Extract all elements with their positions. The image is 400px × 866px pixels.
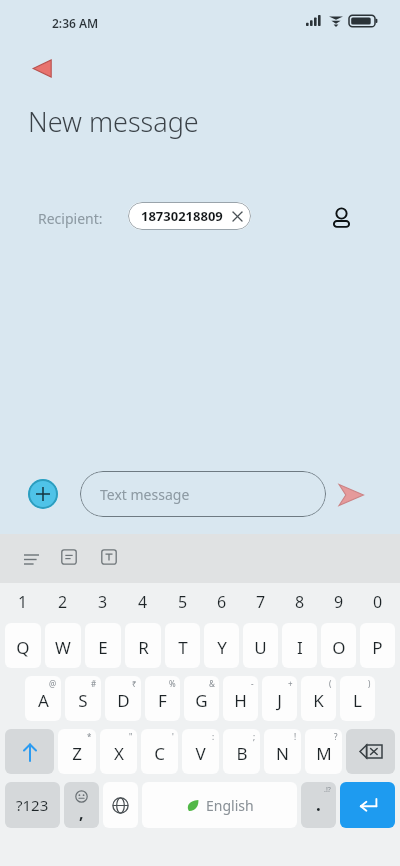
staticText: X <box>114 742 124 765</box>
button[interactable]: @ <box>25 676 61 721</box>
staticText: R <box>138 636 149 659</box>
button[interactable]: Backspace <box>346 729 395 774</box>
staticText: 8 <box>295 591 305 613</box>
staticText: Y <box>217 636 227 659</box>
button[interactable]: U <box>243 623 278 668</box>
staticText: @ <box>49 678 57 689</box>
button[interactable]: ₹ <box>105 676 141 721</box>
button[interactable]: : <box>182 729 219 774</box>
staticText: ' <box>172 731 174 742</box>
button[interactable]: ) <box>340 676 375 721</box>
staticText: New message <box>28 103 199 140</box>
staticText: - <box>251 678 254 689</box>
button[interactable]: P <box>360 623 395 668</box>
staticText: ₹ <box>132 678 137 689</box>
button[interactable]: Change language <box>103 782 138 828</box>
staticText: G <box>195 689 208 712</box>
staticText: % <box>169 678 176 689</box>
staticText: 18730218809 <box>141 207 223 225</box>
staticText: Z <box>72 742 82 765</box>
staticText: 2 <box>58 591 68 613</box>
button[interactable]: Y <box>204 623 239 668</box>
button[interactable]: ! <box>264 729 301 774</box>
staticText: ( <box>329 678 332 689</box>
staticText: U <box>254 636 267 659</box>
button[interactable]: # <box>65 676 101 721</box>
staticText: M <box>316 742 332 765</box>
staticText: T <box>178 636 188 659</box>
staticText: # <box>91 678 97 689</box>
staticText: 5 <box>178 591 188 613</box>
button[interactable]: E <box>85 623 121 668</box>
staticText: A <box>38 689 49 712</box>
button[interactable]: 7 <box>241 585 280 619</box>
button[interactable]: I <box>282 623 317 668</box>
staticText: Text message <box>100 485 190 504</box>
button[interactable]: Enter <box>340 782 395 828</box>
staticText: E <box>98 636 108 659</box>
button[interactable]: 2 <box>43 585 83 619</box>
staticText: : <box>212 731 215 742</box>
button[interactable]: Q <box>5 623 41 668</box>
staticText: ; <box>253 731 256 742</box>
staticText: 2:36 AM <box>52 15 99 31</box>
staticText: 3 <box>98 591 108 613</box>
button[interactable]: 6 <box>202 585 241 619</box>
button[interactable]: English <box>142 782 297 828</box>
button[interactable]: W <box>45 623 81 668</box>
button[interactable]: Text message <box>80 471 326 517</box>
button[interactable]: 5 <box>163 585 202 619</box>
button[interactable]: % <box>145 676 180 721</box>
staticText: J <box>277 689 282 712</box>
button[interactable]: Shift <box>5 729 54 774</box>
button[interactable]: R <box>125 623 161 668</box>
staticText: C <box>154 742 165 765</box>
button[interactable]: Send <box>332 476 370 514</box>
button[interactable]: ' <box>141 729 178 774</box>
staticText: I <box>297 636 303 659</box>
button[interactable]: " <box>100 729 137 774</box>
button[interactable]: ( <box>301 676 336 721</box>
button[interactable]: Back <box>22 48 62 88</box>
button[interactable]: 0 <box>358 585 397 619</box>
staticText: .!? <box>324 785 331 795</box>
staticText: H <box>234 689 247 712</box>
button[interactable]: .!? <box>301 782 336 828</box>
button[interactable]: ?123 <box>5 782 60 828</box>
button[interactable]: ? <box>305 729 342 774</box>
button[interactable]: Choose contact <box>322 199 360 237</box>
button[interactable]: Clipboard <box>58 546 80 568</box>
button[interactable]: + <box>262 676 297 721</box>
staticText: Recipient: <box>38 209 103 228</box>
button[interactable]: 4 <box>123 585 163 619</box>
button[interactable]: 8 <box>280 585 319 619</box>
staticText: O <box>332 636 346 659</box>
staticText: F <box>158 689 167 712</box>
staticText: D <box>117 689 130 712</box>
button[interactable]: * <box>58 729 96 774</box>
button[interactable]: O <box>321 623 356 668</box>
staticText: ? <box>334 731 338 742</box>
staticText: ) <box>368 678 371 689</box>
button[interactable]: 3 <box>83 585 123 619</box>
staticText: 0 <box>373 591 383 613</box>
button[interactable]: 18730218809 <box>128 202 251 230</box>
staticText: , <box>79 802 84 824</box>
button[interactable]: - <box>223 676 258 721</box>
staticText: * <box>87 731 92 742</box>
staticText: W <box>55 636 71 659</box>
button[interactable]: Add attachment <box>28 479 58 509</box>
staticText: + <box>288 678 293 689</box>
button[interactable]: ; <box>223 729 260 774</box>
staticText: & <box>209 678 215 689</box>
button[interactable]: & <box>184 676 219 721</box>
staticText: 9 <box>334 591 344 613</box>
button[interactable]: Text editing <box>98 546 120 568</box>
button[interactable]: Emoji and comma <box>64 782 99 828</box>
button[interactable]: Keyboard menu <box>18 546 44 572</box>
button[interactable]: 1 <box>3 585 43 619</box>
button[interactable]: 9 <box>319 585 358 619</box>
button[interactable]: T <box>165 623 200 668</box>
staticText: V <box>195 742 206 765</box>
staticText: 4 <box>138 591 148 613</box>
